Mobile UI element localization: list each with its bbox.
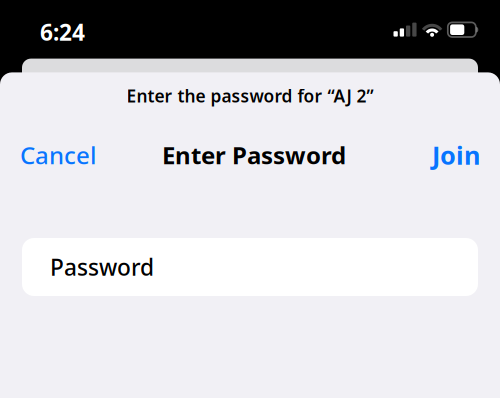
staticText: Join: [432, 138, 480, 172]
staticText: Enter Password: [162, 139, 346, 171]
button[interactable]: Join: [410, 137, 480, 173]
staticText: Cancel: [20, 139, 96, 171]
staticText: Password: [50, 252, 154, 282]
button[interactable]: Cancel: [20, 137, 110, 173]
staticText: 6:24: [40, 17, 85, 47]
staticText: Enter the password for “AJ 2”: [126, 84, 373, 107]
button[interactable]: Password: [22, 238, 478, 296]
